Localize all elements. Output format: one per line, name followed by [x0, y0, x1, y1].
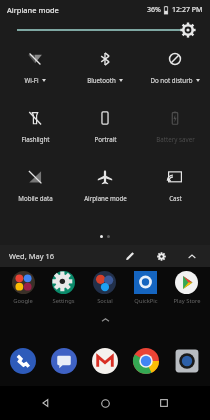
- staticText: 36%: [147, 5, 161, 15]
- button[interactable]: Edit: [121, 247, 139, 265]
- staticText: Social: [97, 297, 113, 305]
- staticText: Settings: [52, 297, 75, 305]
- staticText: Airplane mode: [84, 194, 127, 202]
- button[interactable]: QuickPic: [125, 271, 166, 305]
- button[interactable]: Play Store: [166, 271, 207, 305]
- staticText: 12:27 PM: [172, 5, 203, 15]
- staticText: QuickPic: [134, 297, 158, 305]
- button[interactable]: Portrait: [70, 100, 140, 159]
- button[interactable]: Airplane mode: [70, 159, 140, 218]
- button[interactable]: Bluetooth: [70, 41, 140, 100]
- button[interactable]: Collapse: [183, 247, 201, 265]
- staticText: Google: [13, 297, 33, 305]
- staticText: Cast: [169, 194, 182, 202]
- staticText: Flashlight: [21, 135, 50, 143]
- button[interactable]: Battery saver: [140, 100, 210, 159]
- button[interactable]: Flashlight: [0, 100, 70, 159]
- button[interactable]: [0, 19, 210, 41]
- button[interactable]: Settings: [43, 271, 84, 305]
- staticText: Battery saver: [156, 135, 195, 143]
- button[interactable]: Settings: [152, 247, 170, 265]
- button[interactable]: Chrome: [133, 348, 159, 374]
- staticText: Portrait: [94, 135, 117, 143]
- button[interactable]: Recents: [151, 390, 177, 416]
- button[interactable]: Google: [3, 271, 43, 305]
- button[interactable]: Wi-Fi: [0, 41, 70, 100]
- button[interactable]: Gmail: [92, 348, 118, 374]
- button[interactable]: Mobile data: [0, 159, 70, 218]
- staticText: Wi-Fi: [24, 76, 39, 84]
- button[interactable]: Back: [33, 390, 59, 416]
- button[interactable]: Home: [92, 390, 118, 416]
- button[interactable]: Messages: [51, 348, 77, 374]
- button[interactable]: Do not disturb: [140, 41, 210, 100]
- staticText: Wed, May 16: [9, 251, 54, 261]
- button[interactable]: Cast: [140, 159, 210, 218]
- button[interactable]: Camera: [174, 348, 200, 374]
- staticText: Bluetooth: [87, 76, 116, 84]
- button[interactable]: Phone: [10, 348, 36, 374]
- staticText: Do not disturb: [150, 76, 193, 84]
- button[interactable]: Social: [84, 271, 125, 305]
- staticText: Play Store: [173, 297, 201, 305]
- staticText: Mobile data: [18, 194, 53, 202]
- staticText: Airplane mode: [7, 5, 59, 15]
